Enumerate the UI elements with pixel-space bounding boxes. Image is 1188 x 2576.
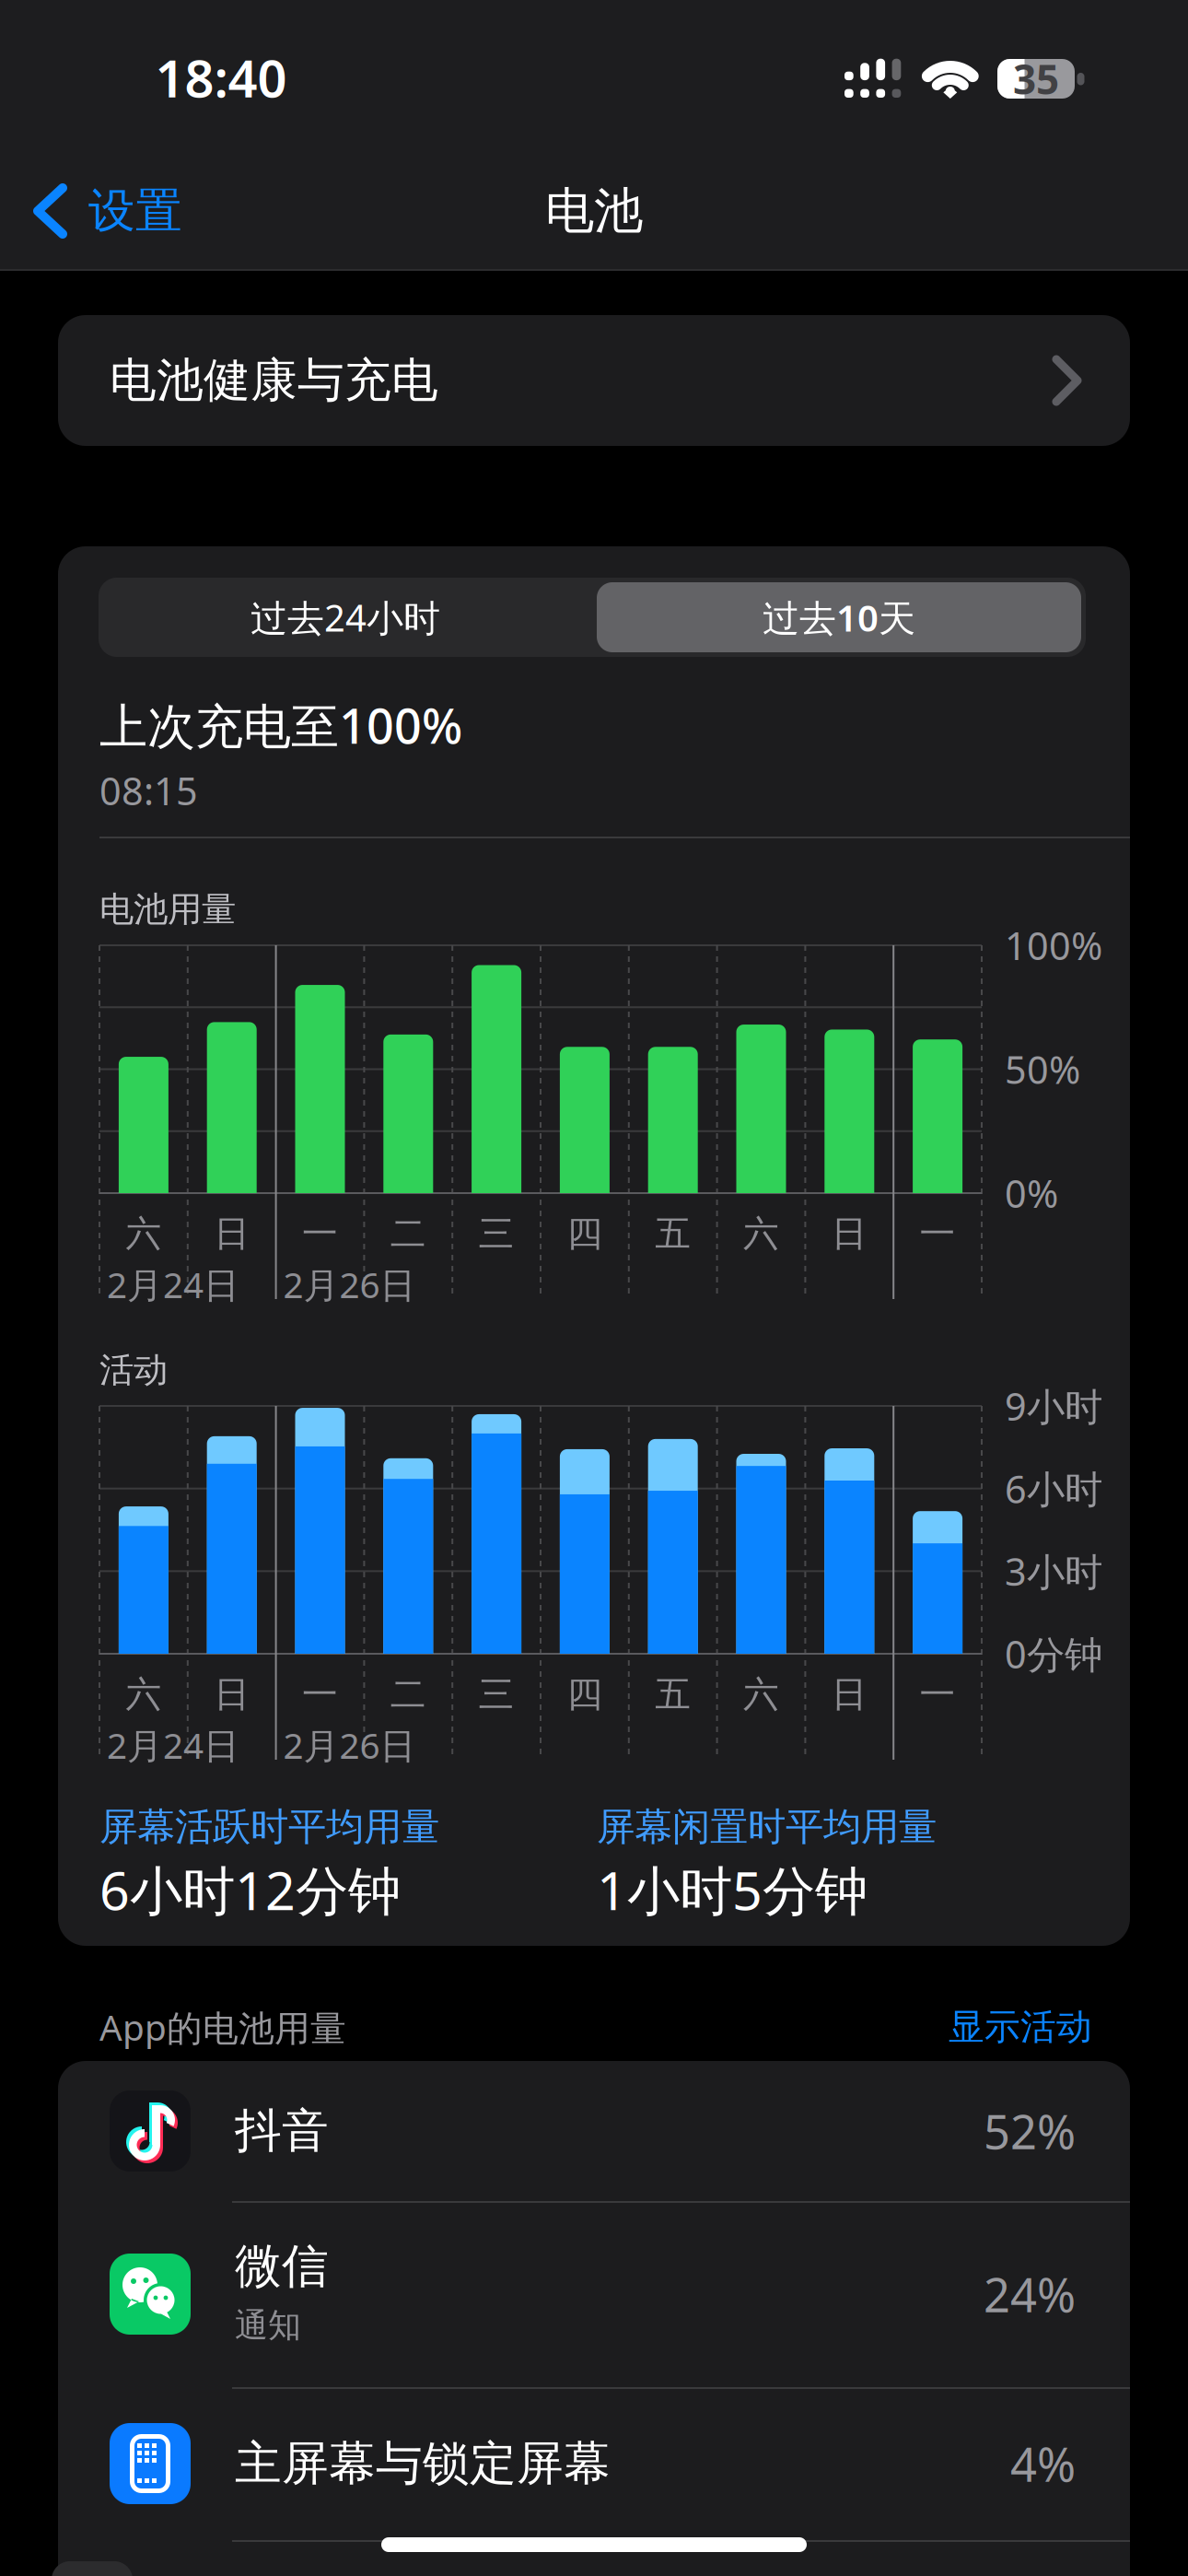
staticText: 52%	[984, 2100, 1076, 2162]
staticText: 0%	[1005, 1168, 1058, 1218]
staticText: 上次充电至100%	[99, 693, 462, 757]
staticText: 五	[655, 1672, 691, 1716]
staticText: 一	[920, 1212, 956, 1256]
staticText: 一	[920, 1672, 956, 1716]
staticText: 6小时	[1005, 1463, 1102, 1514]
staticText: 0分钟	[1005, 1629, 1102, 1679]
button[interactable]: 抖音	[58, 2061, 1130, 2201]
staticText: 2月26日	[283, 1261, 416, 1308]
staticText: 六	[126, 1212, 162, 1256]
staticText: 电池用量	[99, 888, 236, 931]
staticText: 9小时	[1005, 1381, 1102, 1431]
staticText: 四	[567, 1212, 603, 1256]
staticText: 日	[214, 1672, 250, 1716]
staticText: 过去24小时	[250, 593, 440, 642]
staticText: 一	[302, 1672, 338, 1716]
staticText: 4%	[1010, 2433, 1076, 2495]
staticText: 35	[1013, 52, 1059, 106]
staticText: 2月26日	[283, 1721, 416, 1769]
button[interactable]: 过去24小时	[99, 578, 592, 657]
staticText: 电池健康与充电	[110, 352, 438, 409]
staticText: 六	[743, 1212, 779, 1256]
staticText: 日	[214, 1212, 250, 1256]
staticText: 通知	[235, 2305, 301, 2346]
staticText: 显示活动	[949, 2005, 1092, 2049]
staticText: 六	[126, 1672, 162, 1716]
button[interactable]: 设置	[34, 181, 246, 263]
staticText: 18:40	[155, 43, 287, 112]
staticText: 二	[390, 1672, 426, 1716]
button[interactable]: 显示活动	[816, 2004, 1092, 2050]
button[interactable]: 过去10天	[592, 578, 1086, 657]
staticText: 6小时12分钟	[99, 1855, 401, 1925]
staticText: 三	[479, 1212, 514, 1256]
staticText: 电池	[545, 181, 643, 241]
staticText: 活动	[99, 1349, 168, 1391]
staticText: 五	[655, 1212, 691, 1256]
staticText: 二	[390, 1212, 426, 1256]
staticText: 微信	[235, 2238, 329, 2295]
staticText: 2月24日	[107, 1721, 239, 1769]
staticText: 3小时	[1005, 1546, 1102, 1596]
button[interactable]: 微信	[58, 2201, 1130, 2387]
staticText: 1小时5分钟	[597, 1855, 868, 1925]
staticText: 50%	[1005, 1044, 1080, 1095]
staticText: 日	[831, 1212, 867, 1256]
staticText: 三	[479, 1672, 514, 1716]
button[interactable]: 电池健康与充电	[58, 315, 1130, 446]
staticText: 六	[743, 1672, 779, 1716]
staticText: 过去10天	[763, 593, 915, 642]
button[interactable]: 主屏幕与锁定屏幕	[58, 2387, 1130, 2540]
staticText: App的电池用量	[99, 2003, 346, 2051]
staticText: 24%	[984, 2263, 1076, 2325]
staticText: 四	[567, 1672, 603, 1716]
staticText: 屏幕活跃时平均用量	[99, 1804, 439, 1850]
staticText: 屏幕闲置时平均用量	[597, 1804, 937, 1850]
staticText: 一	[302, 1212, 338, 1256]
staticText: 抖音	[235, 2102, 329, 2160]
staticText: 日	[831, 1672, 867, 1716]
staticText: 100%	[1005, 920, 1102, 971]
staticText: 主屏幕与锁定屏幕	[235, 2435, 611, 2492]
staticText: 08:15	[99, 765, 198, 816]
staticText: 2月24日	[107, 1261, 239, 1308]
staticText: 设置	[88, 182, 182, 240]
